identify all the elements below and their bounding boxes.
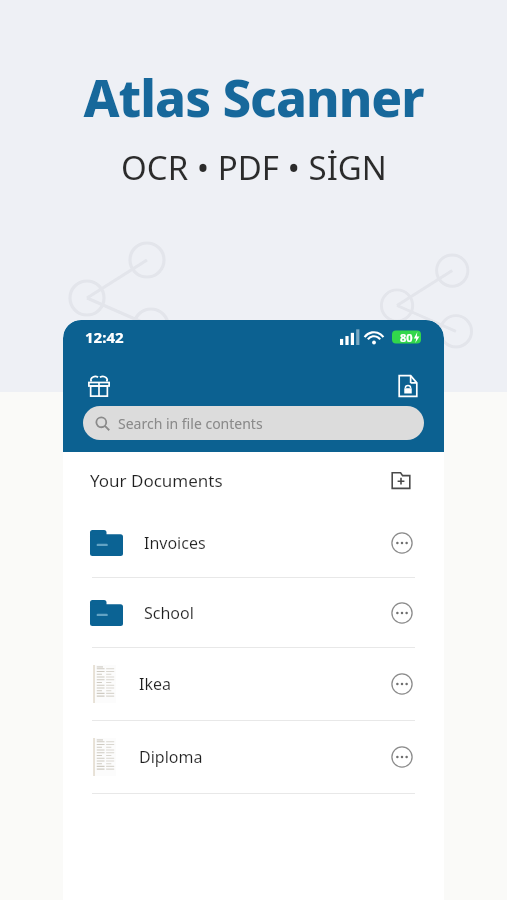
staticText: Your Documents — [90, 469, 223, 492]
staticText: Diploma — [139, 746, 203, 768]
button[interactable]: School — [63, 578, 444, 647]
staticText: 80 — [400, 330, 413, 345]
button[interactable]: Locked documents — [390, 368, 426, 404]
staticText: Ikea — [139, 673, 171, 695]
button[interactable]: More options — [387, 669, 417, 699]
button[interactable]: Invoices — [63, 508, 444, 577]
button[interactable]: Ikea — [63, 648, 444, 720]
button[interactable]: New folder — [385, 464, 417, 496]
staticText: Invoices — [144, 532, 206, 554]
button[interactable]: Diploma — [63, 721, 444, 793]
staticText: OCR • PDF • SİGN — [121, 145, 387, 190]
staticText: Atlas Scanner — [83, 62, 424, 131]
staticText: 12:42 — [85, 327, 124, 347]
button[interactable]: Rewards — [81, 368, 117, 404]
button[interactable]: Search in file contents — [83, 406, 424, 440]
staticText: School — [144, 602, 194, 624]
staticText: Search in file contents — [118, 414, 263, 433]
button[interactable]: More options — [387, 742, 417, 772]
button[interactable]: More options — [387, 598, 417, 628]
button[interactable]: More options — [387, 528, 417, 558]
